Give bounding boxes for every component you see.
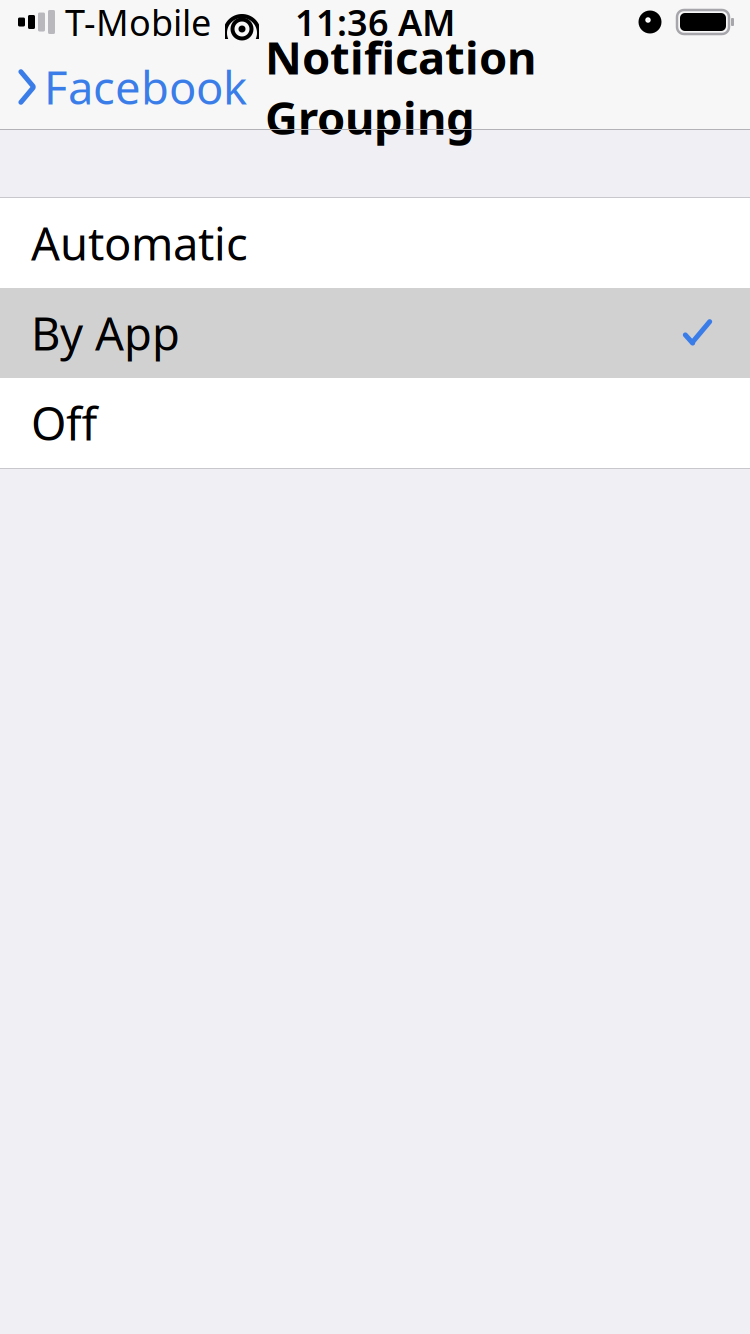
staticText: Automatic: [31, 213, 248, 273]
staticText: Facebook: [44, 57, 247, 117]
staticText: Off: [31, 393, 97, 453]
staticText: T-Mobile: [65, 0, 211, 46]
button[interactable]: Facebook: [0, 43, 247, 131]
button[interactable]: By App: [0, 288, 750, 378]
staticText: By App: [31, 303, 180, 363]
button[interactable]: Off: [0, 378, 750, 468]
button[interactable]: Automatic: [0, 198, 750, 288]
staticText: 11:36 AM: [295, 0, 455, 46]
staticText: Notification Grouping: [265, 27, 536, 147]
